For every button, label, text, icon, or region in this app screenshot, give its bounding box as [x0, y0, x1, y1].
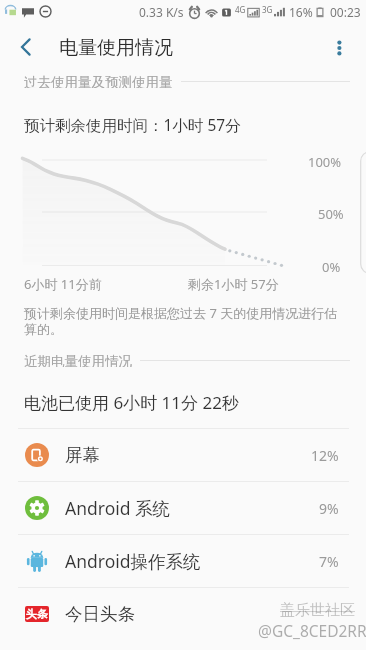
- button[interactable]: 头条: [0, 588, 366, 640]
- staticText: 9%: [319, 499, 339, 518]
- button[interactable]: Android 系统: [0, 482, 366, 534]
- staticText: 近期电量使用情况: [24, 353, 132, 367]
- button[interactable]: Back: [10, 31, 42, 63]
- staticText: @GC_8CED2RR: [258, 620, 366, 641]
- staticText: 16%: [289, 4, 313, 20]
- staticText: 6小时 11分前: [24, 275, 102, 293]
- staticText: 0.33 K/s: [139, 4, 184, 20]
- staticText: 过去使用量及预测使用量: [24, 74, 173, 88]
- staticText: 50%: [318, 205, 344, 223]
- staticText: 剩余1小时 57分: [188, 275, 279, 293]
- button[interactable]: 屏幕: [0, 429, 366, 481]
- staticText: 屏幕: [65, 444, 100, 466]
- staticText: 100%: [308, 153, 342, 171]
- staticText: 预计剩余使用时间：1小时 57分: [24, 114, 241, 135]
- staticText: 0%: [322, 258, 341, 276]
- staticText: 3G: [262, 4, 273, 15]
- staticText: 今日头条: [65, 603, 135, 625]
- staticText: 00:23: [330, 4, 361, 20]
- staticText: 4G: [235, 4, 246, 15]
- button[interactable]: More options: [318, 32, 350, 64]
- staticText: 盖乐世社区: [280, 601, 355, 620]
- staticText: Android操作系统: [65, 549, 201, 573]
- staticText: 电量使用情况: [59, 36, 173, 60]
- staticText: Android 系统: [65, 496, 171, 520]
- staticText: 头条: [26, 607, 48, 621]
- staticText: 预计剩余使用时间是根据您过去 7 天的使用情况进行估算的。: [24, 304, 338, 337]
- staticText: 7%: [319, 552, 339, 571]
- staticText: 电池已使用 6小时 11分 22秒: [24, 391, 239, 414]
- button[interactable]: Android操作系统: [0, 535, 366, 587]
- staticText: 12%: [311, 446, 339, 465]
